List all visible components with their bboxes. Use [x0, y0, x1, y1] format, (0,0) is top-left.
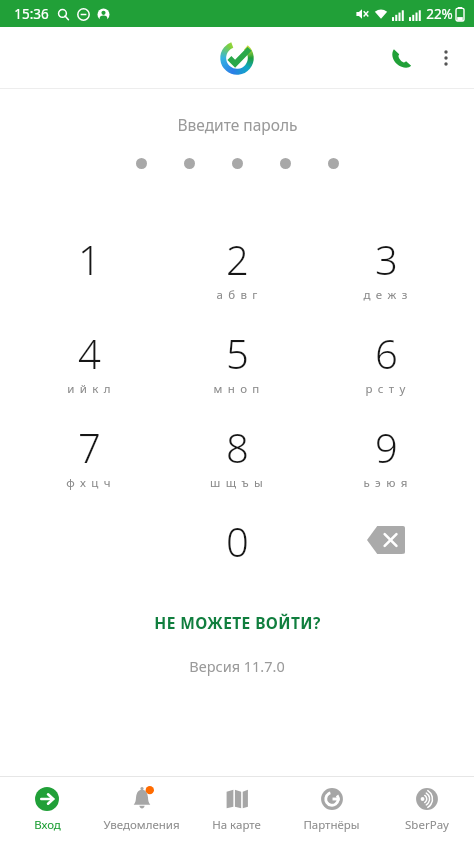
staticText: ш щ ъ ы [210, 475, 264, 491]
staticText: Введите пароль [177, 114, 298, 135]
button[interactable]: 7 [29, 420, 149, 492]
staticText: ф х ц ч [66, 475, 112, 491]
staticText: НЕ МОЖЕТЕ ВОЙТИ? [154, 612, 321, 633]
staticText: д е ж з [363, 287, 409, 303]
button[interactable]: 0 [177, 514, 297, 576]
button[interactable]: 1 [29, 232, 149, 304]
button[interactable]: 2 [177, 232, 297, 304]
staticText: и й к л [67, 381, 112, 397]
staticText: 9 [375, 420, 398, 474]
staticText: р с т у [365, 381, 407, 397]
staticText: На карте [212, 817, 261, 833]
button[interactable]: 5 [177, 326, 297, 398]
button[interactable]: 8 [177, 420, 297, 492]
staticText: SberPay [405, 817, 449, 833]
button[interactable]: Вход [0, 780, 94, 839]
staticText: 0 [226, 514, 249, 568]
button[interactable]: Backspace [326, 514, 446, 576]
button[interactable]: 6 [326, 326, 446, 398]
staticText: 3 [375, 232, 398, 286]
staticText: 6 [375, 326, 398, 380]
staticText: 2 [226, 232, 249, 286]
staticText: 5 [226, 326, 249, 380]
button[interactable]: 3 [326, 232, 446, 304]
staticText: 8 [226, 420, 249, 474]
button[interactable]: 4 [29, 326, 149, 398]
staticText: Вход [34, 817, 61, 833]
staticText: 4 [78, 326, 101, 380]
button[interactable]: 9 [326, 420, 446, 492]
button[interactable]: НЕ МОЖЕТЕ ВОЙТИ? [136, 606, 339, 639]
staticText: 1 [78, 232, 101, 286]
staticText: 22% [426, 5, 453, 23]
button[interactable]: На карте [189, 780, 284, 839]
staticText: ь э ю я [363, 475, 409, 491]
staticText: Партнёры [303, 817, 360, 833]
button[interactable]: More options [424, 36, 468, 80]
staticText: 15:36 [14, 5, 49, 23]
staticText: м н о п [213, 381, 261, 397]
staticText: 7 [78, 420, 101, 474]
button[interactable]: Call [378, 35, 424, 81]
staticText: Версия 11.7.0 [189, 656, 285, 676]
staticText: а б в г [216, 287, 259, 303]
button[interactable]: Партнёры [284, 780, 379, 839]
staticText: Уведомления [103, 817, 180, 833]
button[interactable]: Уведомления [94, 780, 189, 839]
button[interactable]: SberPay [379, 780, 474, 839]
